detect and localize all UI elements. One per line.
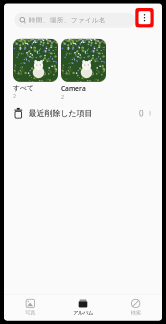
- button[interactable]: More options: [135, 8, 154, 27]
- button[interactable]: すべて: [13, 39, 58, 100]
- staticText: 2: [61, 93, 64, 100]
- staticText: 検索: [131, 309, 141, 316]
- button[interactable]: アルバム: [57, 296, 109, 319]
- button[interactable]: 写真: [4, 296, 57, 319]
- staticText: アルバム: [73, 309, 93, 316]
- button[interactable]: 最近削除した項目: [4, 102, 162, 124]
- staticText: 写真: [25, 309, 35, 316]
- staticText: 最近削除した項目: [29, 108, 93, 118]
- button[interactable]: 検索: [109, 296, 162, 319]
- staticText: すべて: [13, 84, 34, 92]
- button[interactable]: Camera: [61, 39, 106, 100]
- staticText: 0: [139, 108, 144, 119]
- staticText: 2: [13, 93, 16, 100]
- staticText: 時間、場所、ファイル名: [29, 16, 106, 24]
- staticText: Camera: [61, 84, 86, 93]
